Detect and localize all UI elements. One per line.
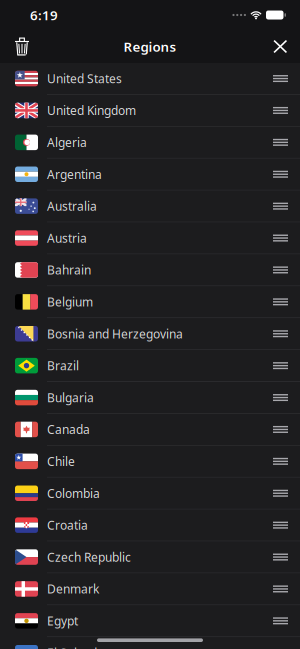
staticText: Austria — [47, 230, 87, 246]
staticText: United States — [47, 71, 122, 86]
staticText: ★ — [16, 454, 22, 461]
staticText: Bosnia and Herzegovina — [47, 326, 183, 342]
button[interactable]: Croatia — [0, 510, 300, 541]
button[interactable]: Delete — [0, 31, 39, 61]
button[interactable]: Czech Republic — [0, 541, 300, 573]
button[interactable]: El Salvador — [0, 637, 300, 649]
staticText: ★ — [16, 70, 23, 80]
button[interactable]: Belgium — [0, 286, 300, 318]
staticText: Croatia — [47, 517, 88, 533]
staticText: Brazil — [47, 358, 79, 374]
button[interactable]: Colombia — [0, 478, 300, 510]
staticText: Chile — [47, 453, 75, 469]
staticText: Regions — [123, 38, 176, 55]
button[interactable]: Argentina — [0, 159, 300, 191]
staticText: Australia — [47, 198, 97, 214]
staticText: Colombia — [47, 485, 100, 501]
button[interactable]: Brazil — [0, 350, 300, 382]
staticText: Argentina — [47, 166, 102, 182]
button[interactable]: Denmark — [0, 573, 300, 605]
button[interactable]: Canada — [0, 414, 300, 446]
staticText: Canada — [47, 421, 90, 437]
staticText: El Salvador — [47, 645, 109, 649]
staticText: Czech Republic — [47, 549, 131, 565]
staticText: Denmark — [47, 581, 99, 597]
staticText: Belgium — [47, 294, 93, 310]
button[interactable]: Australia — [0, 191, 300, 222]
button[interactable]: ★ — [0, 63, 300, 95]
button[interactable]: ★ — [0, 446, 300, 478]
staticText: United Kingdom — [47, 102, 136, 118]
button[interactable]: Algeria — [0, 127, 300, 159]
button[interactable]: Bahrain — [0, 254, 300, 286]
staticText: 6:19 — [30, 6, 58, 24]
staticText: Egypt — [47, 613, 78, 629]
staticText: Bulgaria — [47, 390, 94, 405]
staticText: Bahrain — [47, 262, 91, 278]
button[interactable]: United Kingdom — [0, 95, 300, 127]
button[interactable]: Bulgaria — [0, 382, 300, 414]
button[interactable]: Bosnia and Herzegovina — [0, 318, 300, 350]
button[interactable]: Egypt — [0, 605, 300, 637]
button[interactable]: Close — [263, 32, 300, 61]
button[interactable]: Austria — [0, 222, 300, 254]
staticText: Algeria — [47, 134, 87, 150]
